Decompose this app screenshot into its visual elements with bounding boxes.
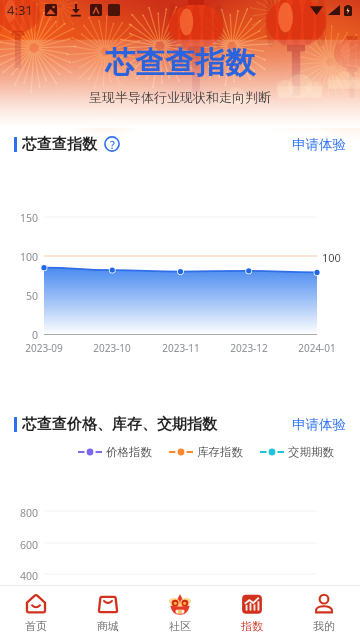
staticText: 芯查查价格、库存、交期指数 (22, 415, 217, 434)
button[interactable]: 申请体验 (292, 136, 346, 153)
staticText: 芯查查指数 (22, 135, 97, 154)
button[interactable]: 帮助 (104, 136, 120, 152)
staticText: 100 (0, 250, 38, 264)
staticText: 呈现半导体行业现状和走向判断 (0, 89, 360, 105)
staticText: 我的 (313, 619, 335, 633)
staticText: 600 (0, 538, 38, 552)
staticText: 指数 (241, 619, 263, 633)
button[interactable]: 首页 (0, 593, 72, 633)
staticText: 2023-09 (18, 341, 70, 355)
staticText: 交期期数 (288, 445, 334, 459)
button[interactable]: 指数 (216, 593, 288, 633)
staticText: 社区 (169, 619, 191, 633)
button[interactable]: 社区 (144, 593, 216, 633)
button[interactable]: 商城 (72, 593, 144, 633)
staticText: 2023-10 (86, 341, 138, 355)
staticText: 2023-11 (155, 341, 207, 355)
staticText: 50 (0, 289, 38, 303)
button[interactable]: 我的 (288, 593, 360, 633)
staticText: 800 (0, 506, 38, 520)
staticText: 首页 (25, 619, 47, 633)
staticText: 100 (322, 250, 341, 265)
staticText: 申请体验 (292, 136, 346, 153)
staticText: 400 (0, 569, 38, 583)
staticText: 2023-12 (223, 341, 275, 355)
button[interactable]: 申请体验 (292, 416, 346, 433)
staticText: ? (110, 137, 115, 152)
staticText: 2024-01 (291, 341, 343, 355)
staticText: 芯查查指数 (0, 44, 360, 82)
staticText: 商城 (97, 619, 119, 633)
staticText: 价格指数 (106, 445, 152, 459)
staticText: 150 (0, 211, 38, 225)
staticText: 申请体验 (292, 416, 346, 433)
staticText: 4:31 (7, 1, 33, 19)
staticText: 0 (0, 328, 38, 342)
staticText: 库存指数 (197, 445, 243, 459)
